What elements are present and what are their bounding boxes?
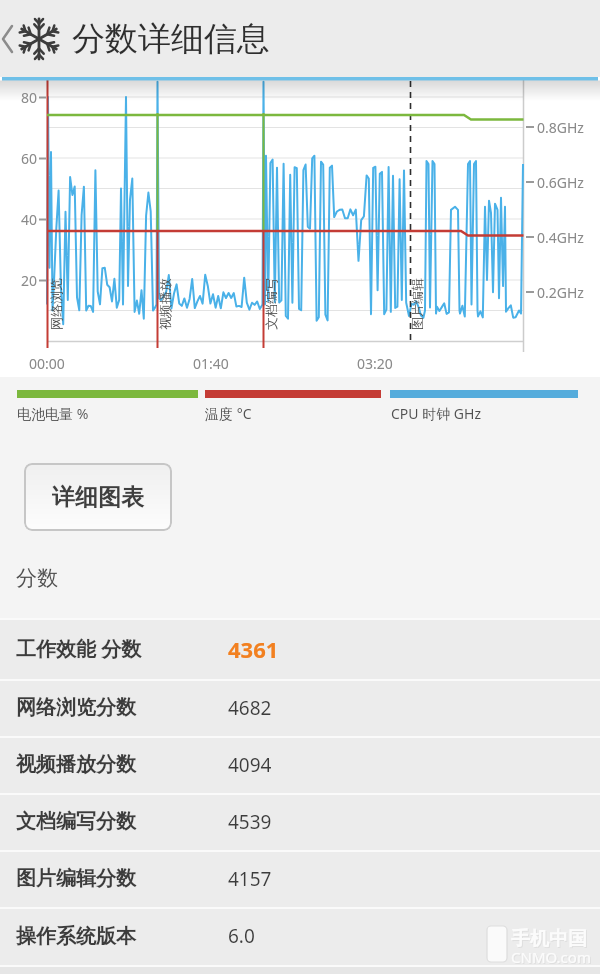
staticText: 手机中国 — [512, 928, 588, 952]
staticText: CNMO.com — [511, 947, 591, 967]
staticText: 60 — [21, 149, 38, 168]
staticText: 01:40 — [193, 354, 229, 373]
button[interactable]: 工作效能 分数 — [0, 618, 600, 679]
staticText: 文档编写分数 — [16, 809, 136, 834]
button[interactable]: 详细图表 — [24, 463, 172, 531]
staticText: 图片编辑分数 — [16, 866, 136, 891]
staticText: 网络浏览分数 — [16, 695, 136, 720]
button[interactable]: 文档编写分数 — [0, 793, 600, 850]
staticText: 0.2GHz — [537, 283, 584, 302]
staticText: 80 — [21, 88, 38, 107]
staticText: 工作效能 分数 — [16, 635, 142, 662]
button[interactable]: 操作系统版本 — [0, 907, 600, 965]
staticText: CPU 时钟 GHz — [391, 404, 481, 423]
button[interactable]: 分数详细信息 — [0, 0, 270, 77]
staticText: 4361 — [228, 634, 279, 664]
staticText: 03:20 — [357, 354, 393, 373]
staticText: 文档编写 — [263, 278, 279, 330]
button[interactable]: 视频播放分数 — [0, 736, 600, 793]
staticText: 4094 — [228, 752, 272, 778]
staticText: 分数详细信息 — [72, 18, 270, 60]
button[interactable]: 网络浏览分数 — [0, 679, 600, 736]
staticText: 0.8GHz — [537, 118, 584, 137]
button[interactable]: 图片编辑分数 — [0, 850, 600, 907]
staticText: 40 — [21, 210, 38, 229]
staticText: 00:00 — [29, 354, 65, 373]
staticText: 6.0 — [228, 923, 255, 949]
staticText: 视频播放 — [157, 278, 173, 330]
staticText: 分数 — [16, 565, 58, 591]
staticText: 0.6GHz — [537, 173, 584, 192]
staticText: 20 — [21, 271, 38, 290]
staticText: 手机中国 — [511, 927, 587, 951]
staticText: 0.4GHz — [537, 228, 584, 247]
staticText: 4682 — [228, 695, 272, 721]
staticText: CNMO.com — [512, 948, 592, 968]
staticText: 图片编辑 — [409, 278, 425, 330]
staticText: 温度 °C — [205, 404, 252, 423]
staticText: 4157 — [228, 866, 272, 892]
staticText: 4539 — [228, 809, 272, 835]
staticText: 网络浏览 — [48, 278, 64, 330]
staticText: 详细图表 — [52, 483, 144, 512]
staticText: 视频播放分数 — [16, 752, 136, 777]
staticText: 电池电量 % — [17, 404, 89, 423]
staticText: 操作系统版本 — [16, 924, 136, 949]
